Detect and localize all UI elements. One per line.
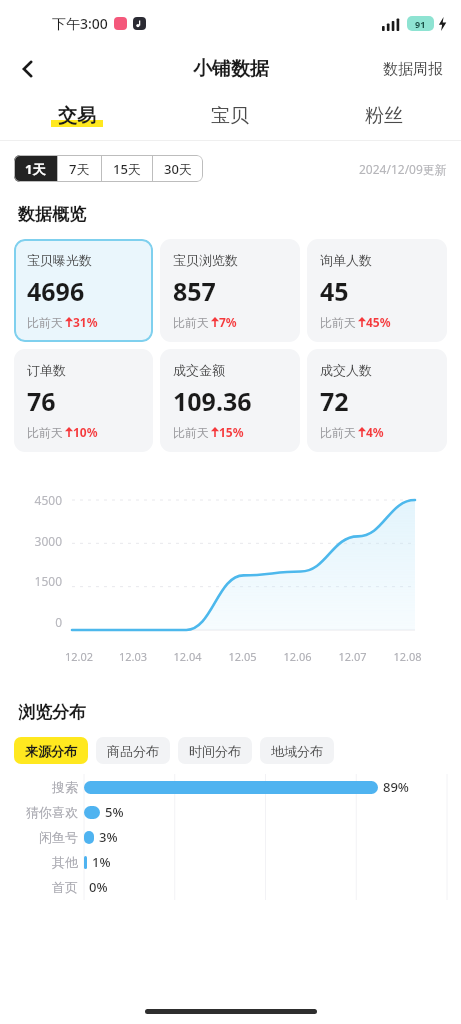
staticText: 89% <box>383 778 409 796</box>
staticText: 4% <box>366 424 384 440</box>
staticText: 1% <box>92 853 111 871</box>
staticText: 31% <box>73 314 98 330</box>
button[interactable]: Back <box>8 49 48 89</box>
staticText: 4500 <box>0 492 62 508</box>
button[interactable]: 宝贝浏览数 <box>160 239 300 342</box>
staticText: 91 <box>415 18 426 30</box>
staticText: 订单数 <box>27 362 66 378</box>
staticText: 12.08 <box>380 649 435 664</box>
staticText: 12.06 <box>270 649 325 664</box>
staticText: 宝贝曝光数 <box>27 252 92 268</box>
staticText: 其他 <box>0 854 78 870</box>
staticText: 浏览分布 <box>18 702 86 723</box>
button[interactable]: 订单数 <box>14 349 153 452</box>
staticText: 45% <box>366 314 391 330</box>
staticText: 7天 <box>69 160 90 178</box>
button[interactable]: 时间分布 <box>178 737 252 764</box>
staticText: 2024/12/09更新 <box>359 161 447 177</box>
staticText: 15天 <box>113 160 141 178</box>
button[interactable]: 1天 <box>14 155 57 182</box>
staticText: 0% <box>89 878 108 896</box>
button[interactable]: 宝贝 <box>153 92 307 140</box>
staticText: 比前天 <box>320 425 356 440</box>
staticText: 搜索 <box>0 779 78 795</box>
staticText: 数据周报 <box>383 60 443 79</box>
staticText: 12.02 <box>52 649 106 664</box>
staticText: 来源分布 <box>25 743 77 759</box>
button[interactable]: 交易 <box>0 92 153 140</box>
staticText: 下午3:00 <box>52 14 108 33</box>
staticText: 比前天 <box>27 425 63 440</box>
staticText: 首页 <box>0 879 78 895</box>
button[interactable]: 7天 <box>58 155 101 182</box>
staticText: 7% <box>219 314 237 330</box>
button[interactable]: 商品分布 <box>96 737 170 764</box>
staticText: 询单人数 <box>320 252 372 268</box>
button[interactable]: 15天 <box>102 155 152 182</box>
staticText: 12.05 <box>215 649 270 664</box>
staticText: 商品分布 <box>107 743 159 759</box>
staticText: 比前天 <box>27 315 63 330</box>
staticText: 1天 <box>25 160 46 178</box>
staticText: 12.03 <box>106 649 160 664</box>
staticText: 粉丝 <box>365 104 403 128</box>
staticText: 4696 <box>27 274 85 308</box>
staticText: 45 <box>320 274 349 308</box>
button[interactable]: 来源分布 <box>14 737 88 764</box>
button[interactable]: 30天 <box>153 155 203 182</box>
staticText: 12.07 <box>325 649 380 664</box>
staticText: 76 <box>27 384 56 418</box>
staticText: 109.36 <box>173 384 252 418</box>
staticText: 交易 <box>58 104 96 128</box>
button[interactable]: 数据周报 <box>379 56 447 83</box>
button[interactable]: 成交金额 <box>160 349 300 452</box>
staticText: 宝贝浏览数 <box>173 252 238 268</box>
staticText: 15% <box>219 424 244 440</box>
staticText: 宝贝 <box>211 104 249 128</box>
staticText: 72 <box>320 384 349 418</box>
button[interactable]: 宝贝曝光数 <box>14 239 153 342</box>
staticText: 数据概览 <box>18 204 86 225</box>
button[interactable]: 地域分布 <box>260 737 334 764</box>
staticText: 闲鱼号 <box>0 829 78 845</box>
button[interactable]: 成交人数 <box>307 349 447 452</box>
staticText: 小铺数据 <box>193 57 269 81</box>
staticText: 猜你喜欢 <box>0 804 78 820</box>
staticText: 10% <box>73 424 98 440</box>
staticText: 12.04 <box>160 649 215 664</box>
staticText: 比前天 <box>173 315 209 330</box>
staticText: 成交金额 <box>173 362 225 378</box>
staticText: 地域分布 <box>271 743 323 759</box>
button[interactable]: 粉丝 <box>307 92 461 140</box>
staticText: 0 <box>0 614 62 630</box>
staticText: 857 <box>173 274 216 308</box>
staticText: 3000 <box>0 533 62 549</box>
staticText: 1500 <box>0 573 62 589</box>
staticText: 3% <box>99 828 118 846</box>
button[interactable]: 询单人数 <box>307 239 447 342</box>
staticText: 比前天 <box>320 315 356 330</box>
staticText: 时间分布 <box>189 743 241 759</box>
staticText: 5% <box>105 803 124 821</box>
staticText: 成交人数 <box>320 362 372 378</box>
staticText: 比前天 <box>173 425 209 440</box>
staticText: 30天 <box>164 160 192 178</box>
